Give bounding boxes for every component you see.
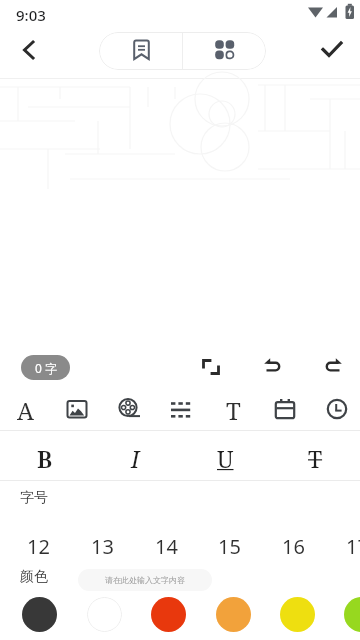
button[interactable]: 16 [271, 532, 315, 560]
button[interactable]: 12 [16, 532, 60, 560]
staticText: 9:03 [16, 5, 46, 25]
button[interactable]: T [216, 394, 250, 424]
button[interactable]: I [113, 441, 157, 475]
staticText: 字号 [20, 489, 48, 507]
button[interactable]: B [23, 441, 67, 475]
button[interactable] [168, 396, 194, 422]
staticText: 17 [346, 533, 360, 560]
button[interactable]: T [293, 441, 337, 475]
button[interactable] [324, 396, 350, 422]
button[interactable] [199, 355, 223, 379]
button[interactable] [318, 35, 346, 63]
button[interactable] [87, 597, 122, 632]
staticText: T [226, 394, 241, 424]
staticText: B [37, 443, 53, 474]
staticText: T [308, 443, 323, 474]
button[interactable]: 0 字 [21, 355, 70, 380]
button[interactable] [321, 354, 345, 378]
button[interactable] [64, 396, 90, 422]
button[interactable]: 17 [335, 532, 360, 560]
staticText: I [131, 443, 140, 474]
button[interactable] [151, 597, 186, 632]
button[interactable] [261, 354, 285, 378]
button[interactable] [22, 597, 57, 632]
button[interactable]: 15 [207, 532, 251, 560]
staticText: 15 [218, 533, 241, 560]
button[interactable] [183, 32, 266, 70]
staticText: 12 [27, 533, 50, 560]
staticText: 0 字 [35, 360, 57, 376]
button[interactable] [344, 597, 360, 632]
button[interactable]: U [203, 441, 247, 475]
staticText: A [17, 394, 34, 424]
staticText: U [217, 443, 234, 474]
staticText: 13 [91, 533, 114, 560]
button[interactable]: 14 [144, 532, 188, 560]
button[interactable] [280, 597, 315, 632]
staticText: 14 [155, 533, 178, 560]
button[interactable]: 13 [80, 532, 124, 560]
staticText: 颜色 [20, 568, 48, 586]
staticText: 请在此处输入文字内容 [105, 575, 185, 585]
button[interactable] [99, 32, 182, 70]
staticText: 16 [282, 533, 305, 560]
button[interactable] [272, 396, 298, 422]
button[interactable] [16, 37, 42, 63]
button[interactable]: A [8, 394, 42, 424]
button[interactable] [116, 396, 142, 422]
button[interactable] [216, 597, 251, 632]
